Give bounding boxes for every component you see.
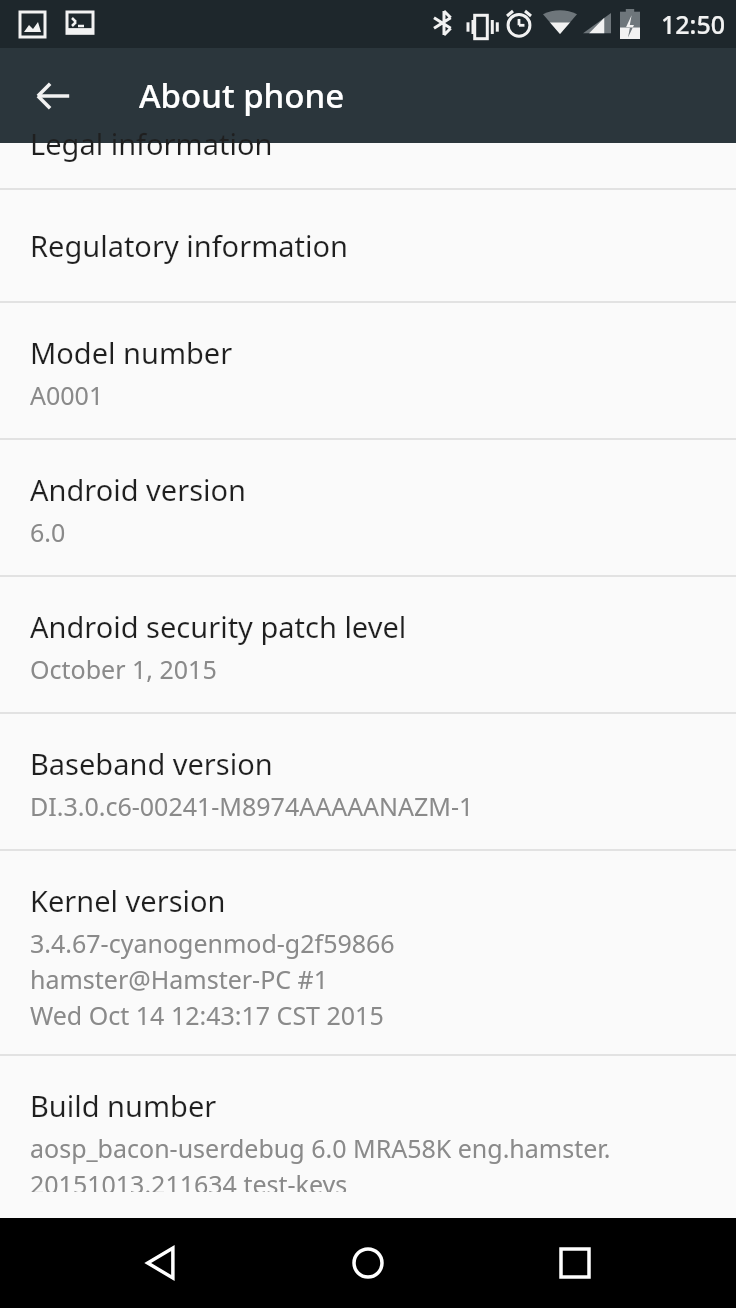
- staticText: 20151013.211634 test-keys: [30, 1167, 348, 1192]
- button[interactable]: Android security patch level: [0, 577, 736, 712]
- button[interactable]: Back: [117, 1218, 207, 1308]
- staticText: Wed Oct 14 12:43:17 CST 2015: [30, 998, 384, 1032]
- staticText: October 1, 2015: [30, 652, 217, 686]
- button[interactable]: Regulatory information: [0, 190, 736, 301]
- staticText: Build number: [30, 1086, 217, 1125]
- staticText: Model number: [30, 333, 233, 372]
- staticText: Android version: [30, 470, 246, 509]
- staticText: 6.0: [30, 515, 66, 549]
- staticText: DI.3.0.c6-00241-M8974AAAAANAZM-1: [30, 789, 474, 823]
- button[interactable]: Build number: [0, 1056, 736, 1218]
- button[interactable]: Legal information: [0, 143, 736, 188]
- staticText: About phone: [139, 73, 345, 118]
- staticText: Baseband version: [30, 744, 273, 783]
- staticText: Android security patch level: [30, 607, 407, 646]
- staticText: hamster@Hamster-PC #1: [30, 962, 329, 996]
- button[interactable]: Android version: [0, 440, 736, 575]
- staticText: Regulatory information: [30, 226, 348, 265]
- button[interactable]: Home: [323, 1218, 413, 1308]
- button[interactable]: Model number: [0, 303, 736, 438]
- staticText: Legal information: [30, 124, 273, 163]
- staticText: Kernel version: [30, 881, 226, 920]
- staticText: A0001: [30, 378, 104, 412]
- staticText: aosp_bacon-userdebug 6.0 MRA58K eng.hams…: [30, 1131, 611, 1165]
- button[interactable]: Recents: [530, 1218, 620, 1308]
- button[interactable]: Baseband version: [0, 714, 736, 849]
- button[interactable]: Back: [22, 65, 84, 127]
- button[interactable]: Kernel version: [0, 851, 736, 1054]
- staticText: 12:50: [661, 7, 726, 41]
- staticText: 3.4.67-cyanogenmod-g2f59866: [30, 926, 395, 960]
